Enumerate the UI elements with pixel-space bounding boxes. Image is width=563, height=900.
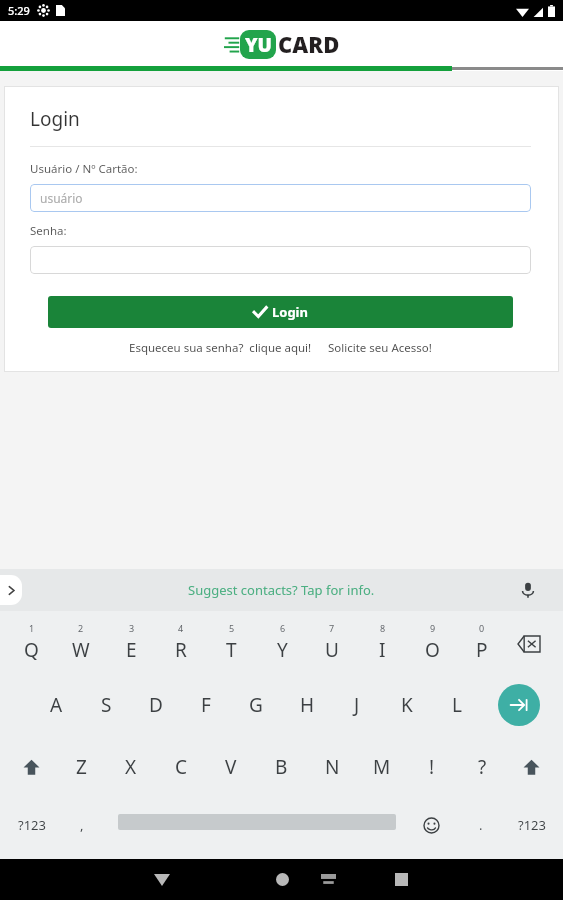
button[interactable]: ?123	[6, 808, 58, 842]
staticText: .	[479, 816, 483, 834]
staticText: Usuário / Nº Cartão:	[30, 161, 138, 177]
staticText: D	[149, 692, 163, 718]
staticText: 3	[129, 622, 135, 634]
button[interactable]: Suggest contacts? Tap for info.	[188, 581, 375, 599]
button[interactable]: Keyboard	[313, 859, 343, 900]
button[interactable]: Emoji	[412, 808, 450, 842]
button[interactable]: A	[31, 673, 81, 736]
staticText: B	[275, 754, 288, 780]
button[interactable]: Recents	[385, 859, 417, 900]
staticText: J	[354, 692, 360, 718]
button[interactable]: Shift right	[508, 750, 554, 784]
staticText: V	[225, 754, 237, 780]
button[interactable]: Esqueceu sua senha? clique aqui!	[129, 340, 312, 356]
button[interactable]: M	[357, 736, 407, 798]
button[interactable]: 0	[457, 611, 507, 673]
staticText: A	[50, 692, 63, 718]
staticText: CARD	[278, 29, 340, 59]
button[interactable]: S	[81, 673, 131, 736]
button[interactable]: 9	[407, 611, 457, 673]
staticText: !	[429, 754, 435, 780]
staticText: Z	[76, 754, 87, 780]
button[interactable]: Expand suggestions	[0, 575, 22, 605]
button[interactable]: B	[256, 736, 306, 798]
staticText: ?	[478, 754, 487, 780]
button[interactable]: Backspace	[506, 627, 552, 661]
button[interactable]: N	[307, 736, 357, 798]
staticText: ?123	[518, 816, 546, 834]
staticText: M	[373, 754, 391, 780]
staticText: usuário	[40, 190, 83, 206]
staticText: Q	[24, 637, 39, 663]
staticText: Senha:	[30, 223, 67, 239]
staticText: U	[325, 637, 339, 663]
button[interactable]: J	[332, 673, 382, 736]
button[interactable]: 5	[206, 611, 256, 673]
button[interactable]: D	[131, 673, 181, 736]
button[interactable]: V	[206, 736, 256, 798]
staticText: L	[452, 692, 462, 718]
staticText: X	[125, 754, 137, 780]
staticText: E	[126, 637, 137, 663]
button[interactable]: Solicite seu Acesso!	[328, 340, 432, 356]
staticText: O	[425, 637, 440, 663]
staticText: YU	[245, 32, 272, 58]
button[interactable]: F	[181, 673, 231, 736]
button[interactable]: K	[382, 673, 432, 736]
button[interactable]: .	[462, 808, 500, 842]
staticText: P	[476, 637, 488, 663]
staticText: I	[379, 637, 386, 663]
button[interactable]: Login	[48, 296, 513, 328]
staticText: R	[175, 637, 187, 663]
button[interactable]: 3	[106, 611, 156, 673]
button[interactable]: 8	[357, 611, 407, 673]
button[interactable]: ,	[62, 808, 102, 842]
button[interactable]: 6	[257, 611, 307, 673]
staticText: T	[226, 637, 237, 663]
button[interactable]: X	[106, 736, 156, 798]
button[interactable]: ?	[457, 736, 507, 798]
staticText: 5:29	[8, 3, 30, 18]
staticText: Esqueceu sua senha? clique aqui!	[129, 340, 312, 356]
button[interactable]: Back	[146, 859, 178, 900]
button[interactable]: C	[156, 736, 206, 798]
staticText: ,	[80, 816, 84, 834]
staticText: 9	[430, 622, 436, 634]
staticText: 2	[78, 622, 84, 634]
staticText: 4	[178, 622, 184, 634]
button[interactable]: 7	[307, 611, 357, 673]
staticText: Suggest contacts? Tap for info.	[188, 581, 375, 599]
button[interactable]: Shift	[8, 750, 54, 784]
staticText: 6	[280, 622, 286, 634]
button[interactable]: !	[407, 736, 457, 798]
staticText: S	[101, 692, 112, 718]
staticText: Y	[277, 637, 288, 663]
button[interactable]: Enter	[498, 684, 540, 726]
staticText: N	[325, 754, 340, 780]
staticText: W	[72, 637, 90, 663]
staticText: H	[300, 692, 315, 718]
button[interactable]: G	[231, 673, 281, 736]
button[interactable]: ?123	[506, 808, 558, 842]
staticText: C	[175, 754, 188, 780]
staticText: 8	[380, 622, 386, 634]
staticText: Login	[30, 106, 80, 132]
button[interactable]: Home	[266, 859, 298, 900]
button[interactable]: Z	[56, 736, 106, 798]
button[interactable]: H	[282, 673, 332, 736]
staticText: 1	[29, 622, 35, 634]
button[interactable]: 1	[6, 611, 56, 673]
button[interactable]	[30, 246, 531, 274]
button[interactable]: usuário	[30, 184, 531, 212]
staticText: K	[401, 692, 413, 718]
staticText: G	[249, 692, 263, 718]
staticText: 0	[479, 622, 485, 634]
staticText: F	[201, 692, 211, 718]
button[interactable]: L	[432, 673, 482, 736]
button[interactable]: 4	[156, 611, 206, 673]
button[interactable]: Voice input	[515, 577, 541, 603]
button[interactable]: 2	[56, 611, 106, 673]
staticText: 5	[229, 622, 235, 634]
staticText: 7	[329, 622, 335, 634]
